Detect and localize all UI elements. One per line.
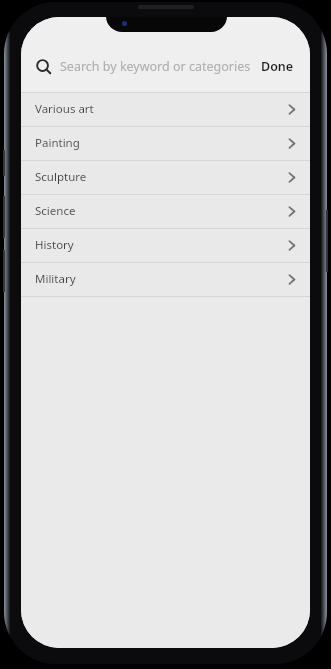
staticText: Various art	[35, 101, 288, 117]
staticText: Military	[35, 271, 288, 287]
staticText: Done	[261, 58, 294, 75]
staticText: Science	[35, 203, 288, 219]
staticText: Search by keyword or categories	[60, 58, 251, 75]
button[interactable]: Painting	[21, 126, 310, 160]
button[interactable]: Various art	[21, 92, 310, 126]
button[interactable]: Sculpture	[21, 160, 310, 194]
button[interactable]: Military	[21, 262, 310, 296]
other: Search	[35, 58, 53, 76]
button[interactable]: Science	[21, 194, 310, 228]
button[interactable]: History	[21, 228, 310, 262]
button[interactable]: Done	[257, 55, 298, 78]
staticText: Sculpture	[35, 169, 288, 185]
staticText: Painting	[35, 135, 288, 151]
staticText: History	[35, 237, 288, 253]
